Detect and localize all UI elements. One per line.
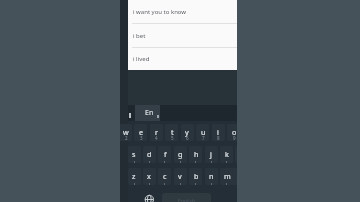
button[interactable]: i lived xyxy=(128,48,237,70)
staticText: m xyxy=(224,171,231,181)
button[interactable] xyxy=(158,146,171,163)
staticText: u xyxy=(201,127,206,137)
staticText: i bet xyxy=(133,32,146,40)
staticText: n xyxy=(209,171,214,181)
staticText: b xyxy=(194,171,199,181)
staticText: y xyxy=(185,127,189,137)
staticText: r xyxy=(155,127,158,137)
button[interactable] xyxy=(134,124,147,141)
button[interactable] xyxy=(150,124,163,141)
button[interactable] xyxy=(227,124,237,141)
staticText: h xyxy=(194,149,199,159)
staticText: 4 xyxy=(155,135,158,141)
staticText: c xyxy=(163,171,167,181)
button[interactable] xyxy=(189,168,202,185)
staticText: j xyxy=(210,149,212,159)
button[interactable] xyxy=(205,146,218,163)
staticText: 5 xyxy=(171,135,174,141)
button[interactable] xyxy=(143,146,156,163)
staticText: e xyxy=(139,127,144,137)
staticText: w xyxy=(123,127,129,137)
button[interactable] xyxy=(220,168,233,185)
staticText: t xyxy=(171,127,174,137)
button[interactable] xyxy=(135,105,160,121)
staticText: i lived xyxy=(133,55,150,63)
button[interactable] xyxy=(205,168,218,185)
button[interactable] xyxy=(144,194,155,202)
staticText: x xyxy=(147,171,151,181)
button[interactable] xyxy=(196,124,209,141)
staticText: z xyxy=(132,171,136,181)
staticText: i xyxy=(217,127,219,137)
staticText: k xyxy=(225,149,229,159)
button[interactable] xyxy=(162,193,211,202)
staticText: 2 xyxy=(125,135,128,141)
button[interactable] xyxy=(165,124,178,141)
button[interactable]: i bet xyxy=(128,24,237,47)
staticText: English xyxy=(178,198,196,202)
staticText: v xyxy=(178,171,182,181)
staticText: 8 xyxy=(217,135,220,141)
button[interactable] xyxy=(181,124,194,141)
button[interactable] xyxy=(143,168,156,185)
button[interactable] xyxy=(128,168,141,185)
staticText: d xyxy=(147,149,152,159)
button[interactable] xyxy=(120,124,132,141)
button[interactable] xyxy=(128,146,141,163)
button[interactable] xyxy=(220,146,233,163)
button[interactable] xyxy=(174,146,187,163)
button[interactable] xyxy=(158,168,171,185)
staticText: s xyxy=(132,149,136,159)
staticText: f xyxy=(164,149,167,159)
staticText: 9 xyxy=(233,135,236,141)
staticText: o xyxy=(232,127,237,137)
staticText: 7 xyxy=(202,135,205,141)
button[interactable] xyxy=(212,124,225,141)
button[interactable] xyxy=(189,146,202,163)
button[interactable]: i want you to know xyxy=(128,0,237,23)
button[interactable] xyxy=(174,168,187,185)
staticText: En xyxy=(145,108,154,118)
staticText: 6 xyxy=(186,135,189,141)
staticText: i want you to know xyxy=(133,8,187,16)
staticText: 3 xyxy=(140,135,143,141)
staticText: g xyxy=(178,149,183,159)
